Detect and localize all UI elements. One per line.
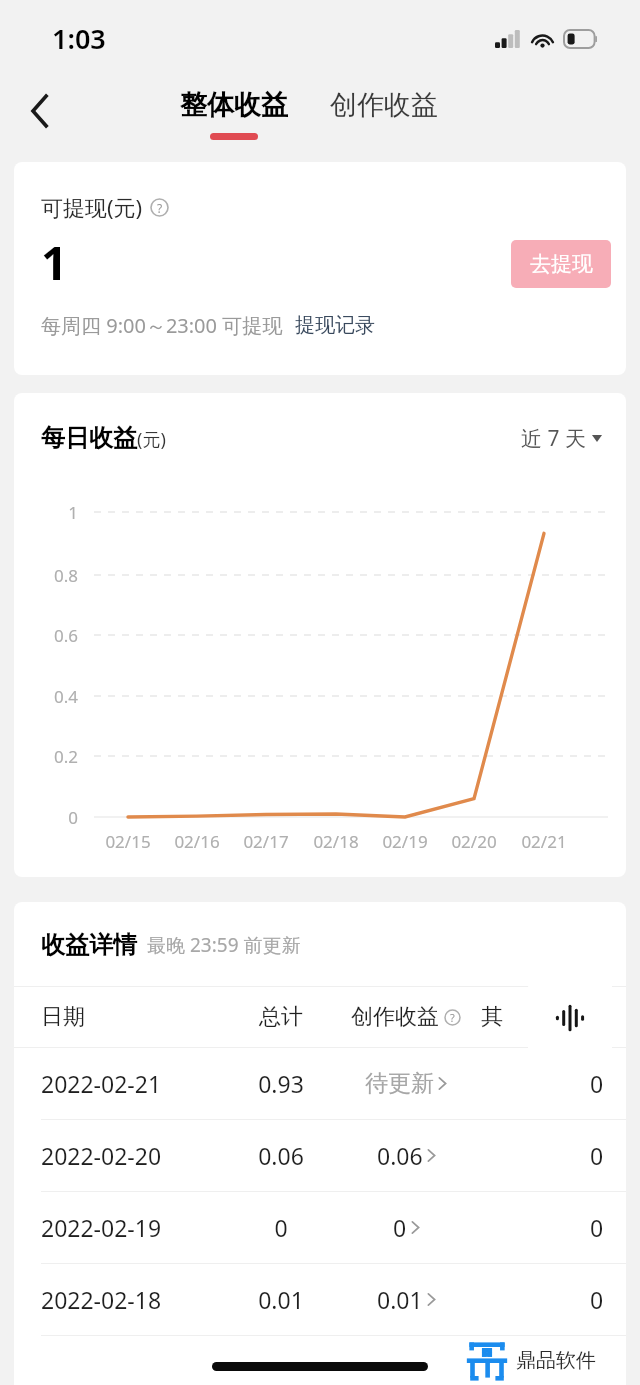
button[interactable]: 提现记录 [295,313,375,338]
staticText: 可提现(元) [41,192,143,222]
staticText: ? [157,200,163,216]
staticText: 0.01 [231,1284,331,1315]
button[interactable]: 2022-02-20 [14,1120,626,1191]
staticText: 创作收益 [330,88,438,122]
staticText: 02/16 [163,830,231,853]
button[interactable]: 2022-02-18 [14,1264,626,1335]
staticText: (元) [137,427,166,452]
staticText: 日期 [41,1003,231,1031]
button[interactable]: Back [14,85,66,137]
button[interactable]: 2022-02-21 [14,1048,626,1119]
staticText: 02/21 [510,830,578,853]
staticText: 整体收益 [180,88,288,122]
staticText: 1:03 [52,20,106,57]
staticText: 0 [590,1212,604,1243]
staticText: 0.2 [14,745,78,768]
button[interactable]: 创作收益 [326,88,442,122]
staticText: 02/15 [94,830,162,853]
staticText: 0.01 [377,1284,423,1315]
staticText: 02/20 [440,830,508,853]
staticText: 其 [481,1003,604,1031]
staticText: 0.8 [14,564,78,587]
button[interactable]: 去提现 [511,240,611,288]
staticText: 2022-02-18 [41,1284,231,1315]
button[interactable]: 2022-02-19 [14,1192,626,1263]
staticText: 0.93 [231,1068,331,1099]
staticText: 去提现 [530,251,593,277]
staticText: 0 [590,1284,604,1315]
staticText: 02/19 [371,830,439,853]
button[interactable]: 整体收益 [176,88,292,140]
staticText: 2022-02-19 [41,1212,231,1243]
staticText: 每日收益 [41,423,137,453]
staticText: 0 [231,1212,331,1243]
staticText: 收益详情 [41,930,137,960]
staticText: 0.6 [14,624,78,647]
staticText: 02/18 [302,830,370,853]
staticText: 0 [14,806,78,829]
staticText: 鼎品软件 [516,1348,596,1373]
staticText: 1 [14,501,78,524]
staticText: 02/17 [232,830,300,853]
staticText: 0.4 [14,685,78,708]
staticText: 0 [590,1068,604,1099]
button[interactable]: Audio [528,972,612,1064]
staticText: 0.06 [231,1140,331,1171]
button[interactable]: Help [150,198,169,217]
button[interactable]: 近 7 天 [521,424,602,453]
staticText: 1 [41,231,68,294]
staticText: 最晚 23:59 前更新 [147,932,301,958]
staticText: 总计 [231,1003,331,1031]
staticText: 0.06 [377,1140,423,1171]
staticText: 每周四 9:00～23:00 可提现 [41,312,283,339]
staticText: 2022-02-21 [41,1068,231,1099]
staticText: 待更新 [365,1069,434,1098]
staticText: ? [450,1010,455,1025]
staticText: 提现记录 [295,313,375,338]
staticText: 0 [393,1212,407,1243]
staticText: 2022-02-20 [41,1140,231,1171]
staticText: 近 7 天 [521,424,586,453]
staticText: 0 [590,1140,604,1171]
staticText: 创作收益 [351,1003,439,1031]
